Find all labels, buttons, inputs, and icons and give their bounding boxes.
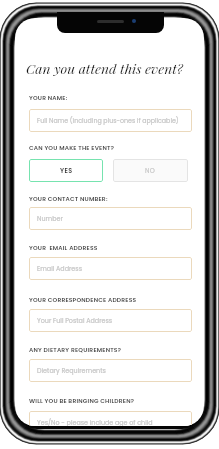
staticText: YOUR CORRESPONDENCE ADDRESS [29,296,137,304]
staticText: Full Name (including plus-ones if applic… [37,116,179,125]
staticText: YES [60,166,73,175]
staticText: NO [145,166,156,175]
staticText: YOUR CONTACT NUMBER: [29,195,108,203]
staticText: Email Address [37,264,82,273]
button[interactable]: YES [29,159,103,182]
button[interactable]: Full Name (including plus-ones if applic… [29,109,192,132]
staticText: Can you attend this event? [26,59,183,77]
staticText: ANY DIETARY REQUIREMENTS? [29,346,122,354]
button[interactable]: Number [29,207,192,230]
button[interactable]: Your Full Postal Address [29,309,192,332]
staticText: Number [37,214,63,223]
staticText: YOUR EMAIL ADDRESS [29,244,98,252]
staticText: CAN YOU MAKE THE EVENT? [29,144,115,152]
button[interactable]: Dietary Requirements [29,359,192,382]
button[interactable]: NO [113,159,188,182]
staticText: YOUR NAME: [29,94,68,102]
staticText: Your Full Postal Address [37,316,113,325]
staticText: Dietary Requirements [37,366,106,375]
staticText: WILL YOU BE BRINGING CHILDREN? [29,397,135,405]
button[interactable]: Yes/No - please include age of child [29,411,192,426]
button[interactable]: Email Address [29,257,192,280]
staticText: Yes/No - please include age of child [37,418,153,426]
